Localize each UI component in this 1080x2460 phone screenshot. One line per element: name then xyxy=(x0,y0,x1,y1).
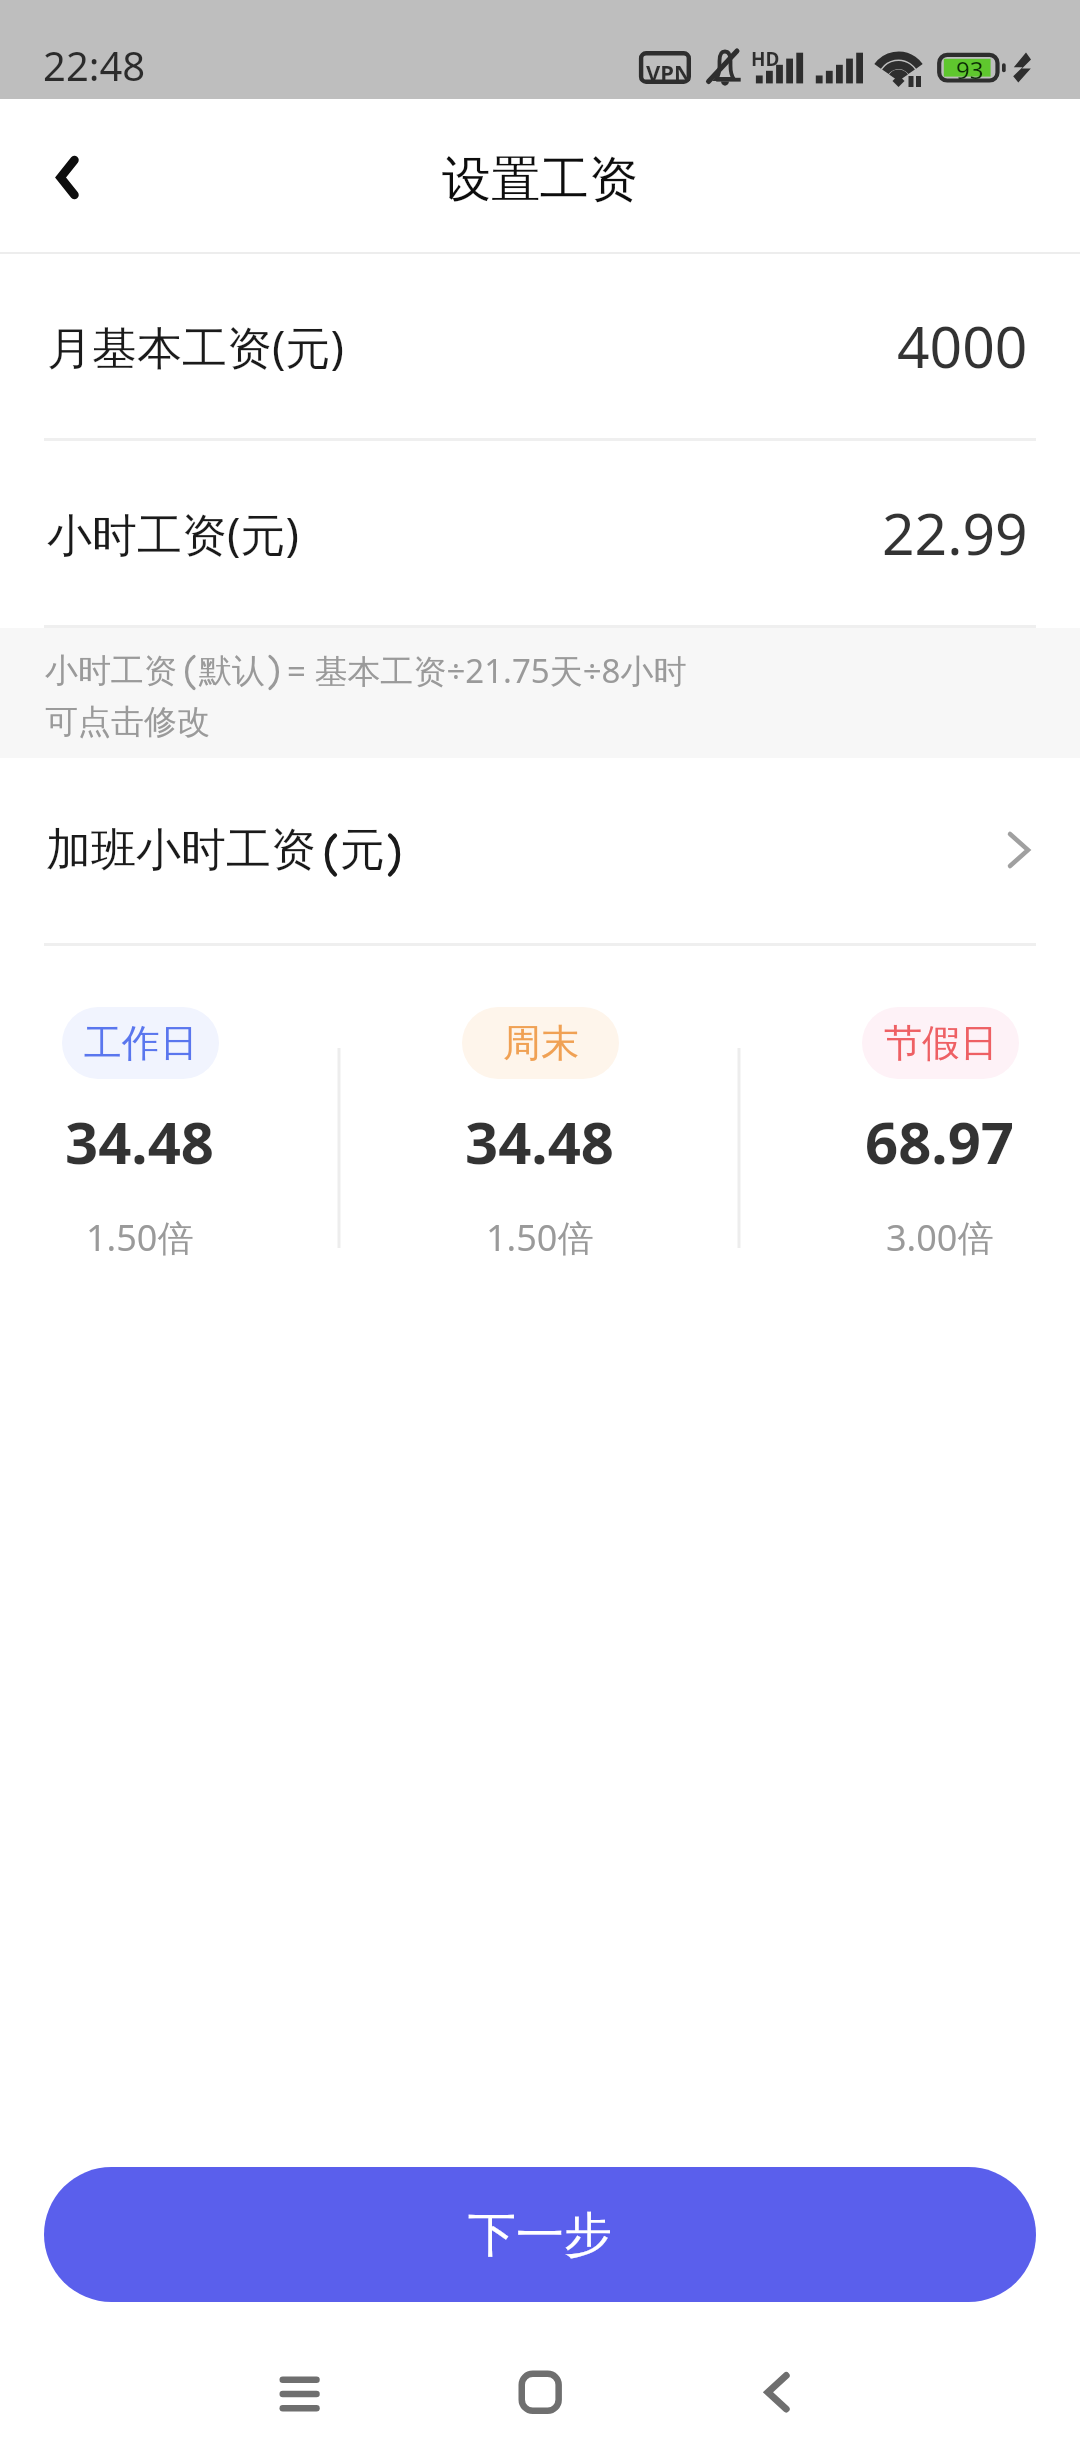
button[interactable]: 返回 xyxy=(0,111,132,243)
button[interactable]: Back xyxy=(710,2334,830,2454)
staticText: 34.48 xyxy=(65,1102,215,1181)
staticText: 68.97 xyxy=(865,1102,1015,1181)
staticText: 设置工资 xyxy=(442,149,638,211)
staticText: 默认 xyxy=(199,650,265,692)
staticText: 可点击修改 xyxy=(45,701,210,743)
staticText: 1.50倍 xyxy=(86,1213,194,1262)
staticText: 节假日 xyxy=(884,1019,998,1067)
staticText: HD xyxy=(751,46,780,72)
staticText: 3.00倍 xyxy=(886,1213,994,1262)
button[interactable]: 小时工资(元) xyxy=(0,441,1080,625)
staticText: 34.48 xyxy=(465,1102,615,1181)
staticText: 月基本工资(元) xyxy=(47,316,345,377)
staticText: 4000 xyxy=(897,307,1028,385)
staticText: = 基本工资÷21.75天÷8小时 xyxy=(287,648,687,693)
button[interactable]: 月基本工资(元) xyxy=(0,254,1080,438)
button[interactable]: 加班小时工资 xyxy=(0,758,1080,943)
button[interactable]: 小时工资 xyxy=(0,628,1080,758)
staticText: 加班小时工资 xyxy=(46,822,316,879)
staticText: 93 xyxy=(956,53,984,86)
staticText: 下一步 xyxy=(468,2205,612,2265)
button[interactable]: 下一步 xyxy=(44,2167,1036,2302)
staticText: 周末 xyxy=(503,1019,579,1067)
staticText: 工作日 xyxy=(84,1019,198,1067)
staticText: 元 xyxy=(340,822,385,879)
staticText: 小时工资 xyxy=(45,650,177,692)
button[interactable]: Home xyxy=(476,2334,596,2454)
staticText: VPN xyxy=(646,57,692,87)
staticText: 小时工资(元) xyxy=(47,503,300,564)
staticText: 22:48 xyxy=(43,38,146,92)
staticText: 1.50倍 xyxy=(486,1213,594,1262)
button[interactable]: Recents xyxy=(240,2334,360,2454)
staticText: 22.99 xyxy=(882,494,1028,572)
